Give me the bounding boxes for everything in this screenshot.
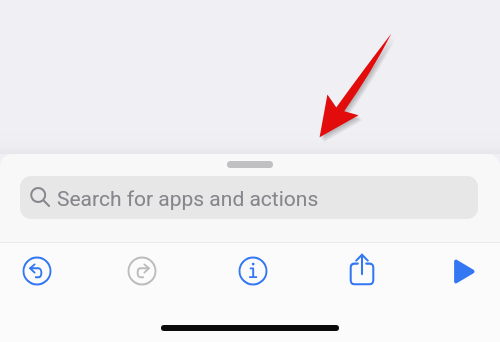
button[interactable]: Details — [230, 257, 276, 285]
staticText: Search for apps and actions — [57, 187, 319, 212]
button[interactable]: Share — [346, 252, 378, 288]
button[interactable]: Run — [446, 256, 480, 286]
button[interactable]: Undo — [14, 257, 60, 285]
button[interactable]: Search for apps and actions — [20, 176, 478, 219]
button[interactable]: Redo — [119, 257, 165, 285]
